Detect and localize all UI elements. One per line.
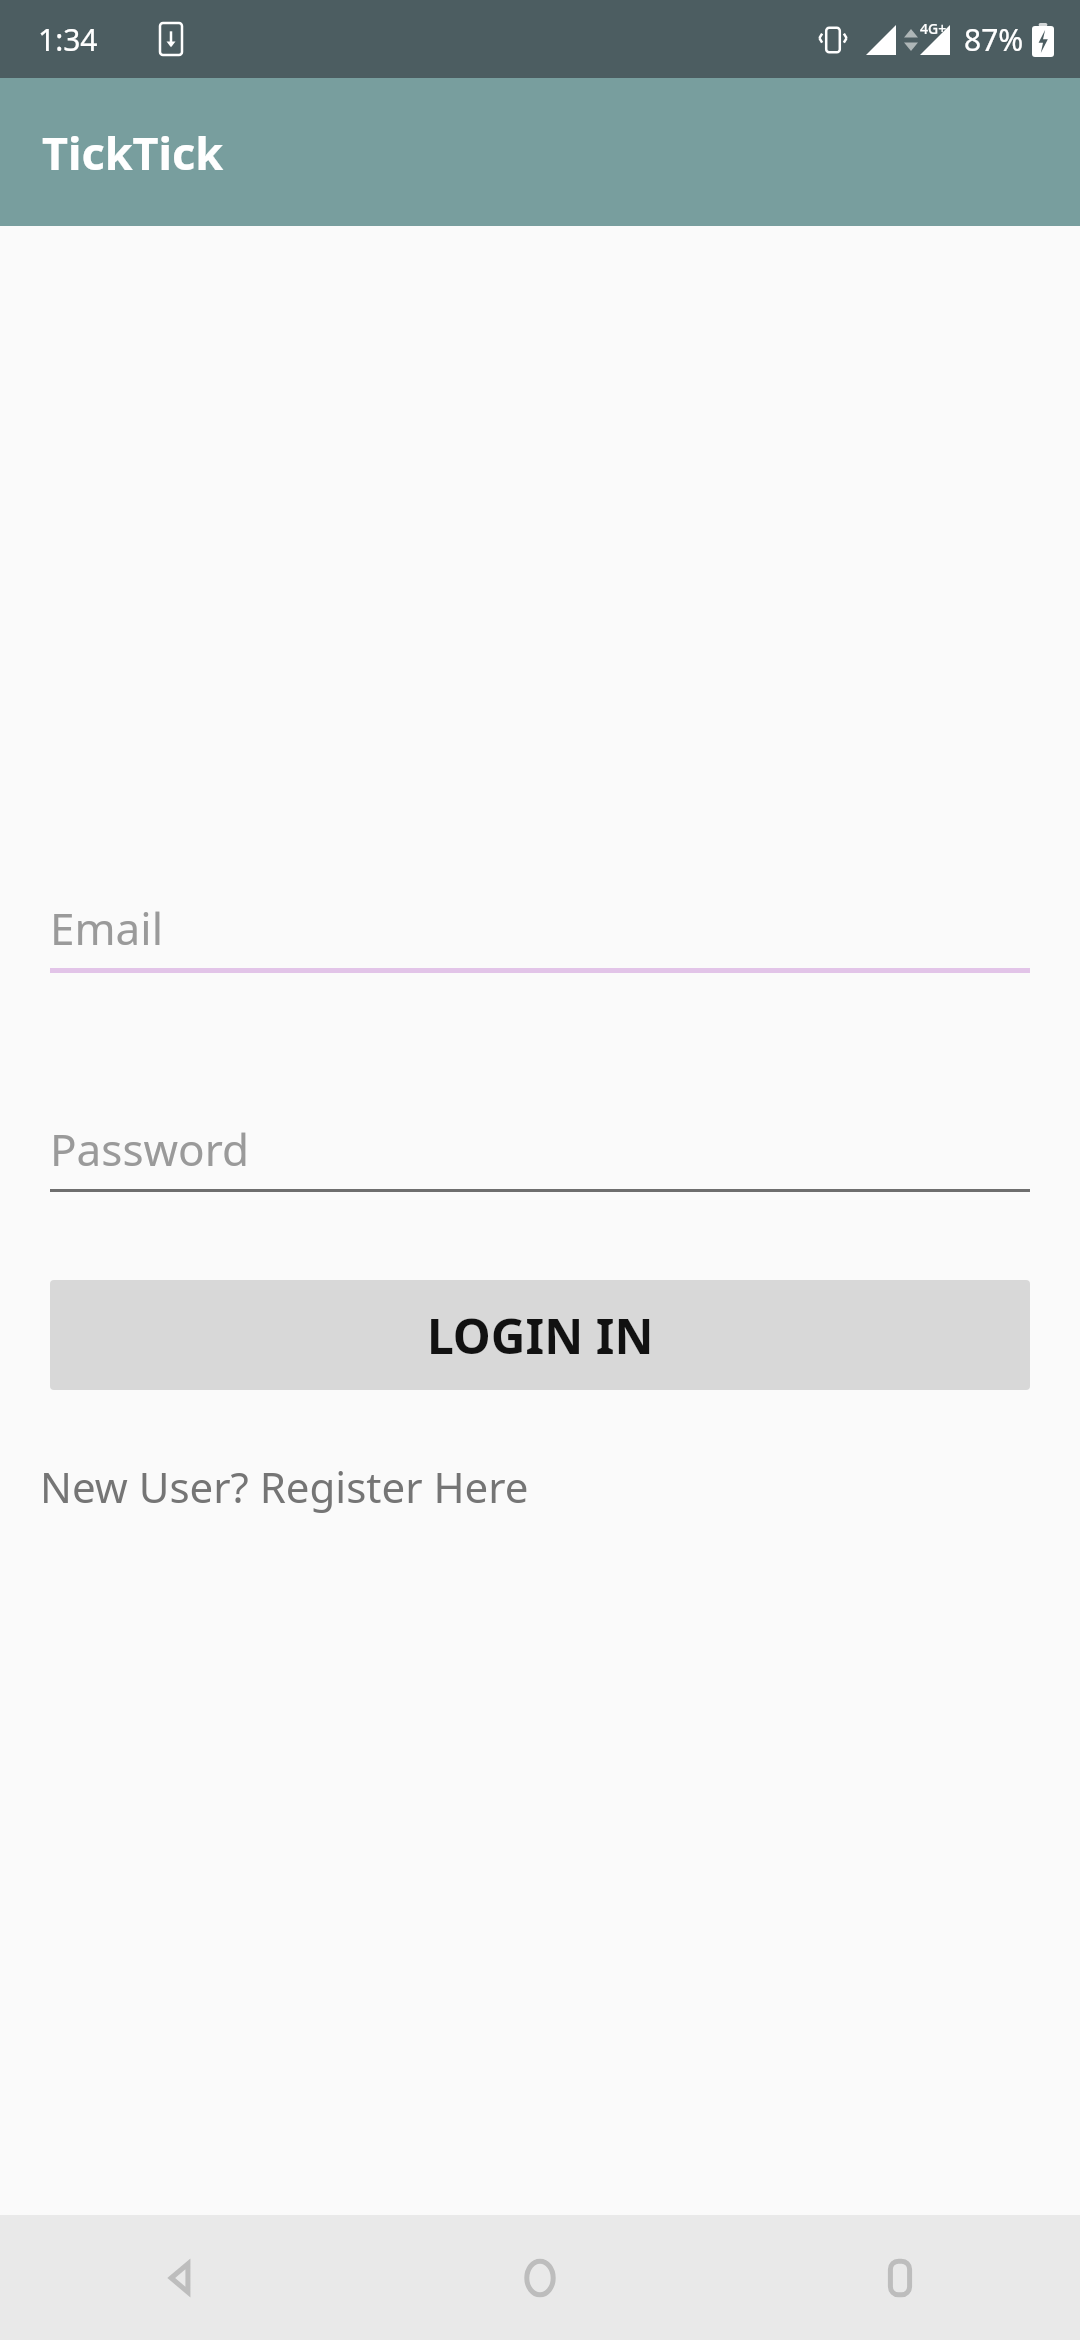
staticText: 1:34 bbox=[38, 19, 98, 60]
staticText: 87% bbox=[964, 19, 1024, 60]
button[interactable]: Back bbox=[0, 2215, 360, 2340]
button[interactable]: LOGIN IN bbox=[50, 1280, 1030, 1390]
staticText: Password bbox=[50, 1119, 250, 1175]
staticText: LOGIN IN bbox=[427, 1303, 654, 1368]
button[interactable]: Recent apps bbox=[720, 2215, 1080, 2340]
button[interactable]: Password input bbox=[50, 1119, 1030, 1192]
button[interactable]: Home bbox=[360, 2215, 720, 2340]
staticText: 4G+ bbox=[920, 19, 947, 38]
staticText: Email bbox=[50, 898, 163, 954]
staticText: New User? Register Here bbox=[40, 1458, 529, 1515]
button[interactable]: Email input bbox=[50, 898, 1030, 973]
staticText: TickTick bbox=[42, 122, 224, 183]
button[interactable]: New User? Register Here bbox=[38, 1452, 531, 1521]
